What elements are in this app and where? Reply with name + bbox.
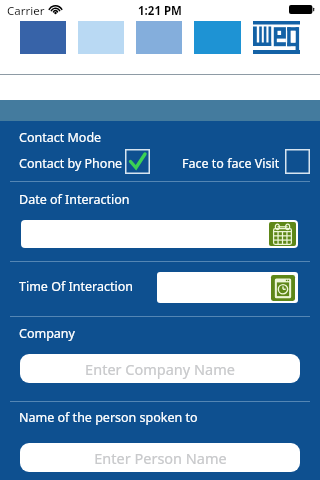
staticText: Contact by Phone <box>19 155 123 172</box>
button[interactable]: Face to face Visit checkbox <box>285 149 310 174</box>
staticText: Date of Interaction <box>19 191 130 208</box>
other: Pick date <box>269 222 296 246</box>
button[interactable]: Company name field <box>20 354 300 383</box>
button[interactable]: Contact by Phone checkbox <box>125 149 150 174</box>
staticText: 1:21 PM <box>138 3 182 19</box>
staticText: Contact Mode <box>19 129 102 146</box>
button[interactable]: Pick time <box>157 272 298 303</box>
button[interactable]: Pick date <box>21 220 298 248</box>
staticText: Enter Company Name <box>85 359 235 379</box>
button[interactable]: Person name field <box>20 443 300 472</box>
staticText: Carrier <box>7 3 45 19</box>
staticText: Face to face Visit <box>182 155 280 172</box>
other: Pick time <box>271 275 295 301</box>
staticText: Name of the person spoken to <box>19 409 198 426</box>
staticText: Time Of Interaction <box>19 278 133 295</box>
staticText: Company <box>19 325 75 342</box>
staticText: Enter Person Name <box>94 448 227 468</box>
